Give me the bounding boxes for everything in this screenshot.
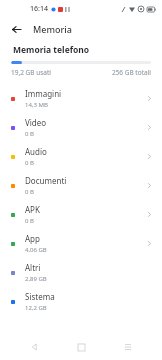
staticText: 0 B: [25, 188, 34, 196]
button[interactable]: App: [0, 229, 162, 258]
button[interactable]: Video: [0, 113, 162, 142]
staticText: Video: [25, 117, 47, 128]
staticText: 14,3 MB: [25, 101, 48, 109]
button[interactable]: Altri: [0, 258, 162, 287]
button[interactable]: Immagini: [0, 84, 162, 113]
staticText: Sistema: [25, 291, 55, 302]
staticText: Documenti: [25, 175, 67, 186]
staticText: App: [25, 233, 40, 244]
staticText: Memoria telefono: [13, 44, 90, 56]
button[interactable]: Home: [68, 334, 94, 360]
staticText: 16:14: [30, 4, 48, 14]
staticText: 19,2 GB usati: [11, 68, 52, 77]
button[interactable]: Documenti: [0, 171, 162, 200]
button[interactable]: Indietro: [21, 334, 47, 360]
button[interactable]: Recenti: [115, 334, 141, 360]
staticText: 2,89 GB: [25, 275, 47, 283]
button[interactable]: Audio: [0, 142, 162, 171]
staticText: 4,06 GB: [25, 246, 47, 254]
staticText: Altri: [25, 262, 41, 273]
button[interactable]: Sistema: [0, 287, 162, 316]
staticText: 256 GB totali: [111, 68, 151, 77]
staticText: APK: [25, 204, 40, 215]
staticText: Audio: [25, 146, 47, 157]
staticText: 0 B: [25, 217, 34, 225]
staticText: 0 B: [25, 130, 34, 138]
staticText: 0 B: [25, 159, 34, 167]
staticText: 12,2 GB: [25, 304, 47, 312]
staticText: Memoria: [33, 23, 72, 35]
button[interactable]: Indietro: [8, 21, 24, 37]
button[interactable]: APK: [0, 200, 162, 229]
staticText: Immagini: [25, 88, 62, 99]
